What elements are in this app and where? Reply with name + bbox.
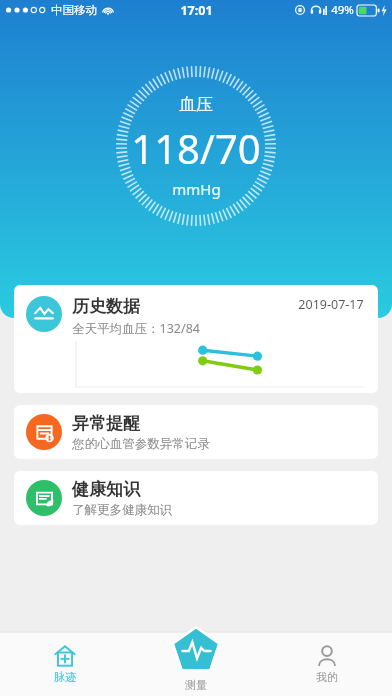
staticText: 118/70 bbox=[131, 121, 261, 175]
staticText: 我的 bbox=[316, 670, 338, 684]
button[interactable]: 测量 bbox=[170, 625, 222, 692]
staticText: 2019-07-17 bbox=[298, 296, 364, 313]
staticText: 17:01 bbox=[180, 2, 213, 19]
staticText: mmHg bbox=[172, 179, 221, 199]
staticText: 测量 bbox=[185, 678, 207, 692]
button[interactable]: 健康知识 bbox=[14, 471, 378, 525]
staticText: 血压 bbox=[179, 94, 213, 115]
button[interactable]: 脉迹 bbox=[0, 632, 130, 696]
button[interactable]: 我的 bbox=[261, 632, 392, 696]
staticText: 中国移动 bbox=[51, 3, 97, 17]
staticText: 您的心血管参数异常记录 bbox=[72, 436, 210, 452]
staticText: 异常提醒 bbox=[72, 413, 140, 434]
staticText: 全天平均血压：132/84 bbox=[72, 320, 200, 337]
staticText: 脉迹 bbox=[54, 670, 76, 684]
button[interactable]: 异常提醒 bbox=[14, 405, 378, 459]
staticText: 49% bbox=[331, 2, 354, 18]
staticText: 历史数据 bbox=[72, 296, 140, 317]
button[interactable]: 历史数据 bbox=[14, 285, 378, 393]
staticText: 了解更多健康知识 bbox=[72, 502, 172, 518]
staticText: 健康知识 bbox=[72, 479, 140, 500]
